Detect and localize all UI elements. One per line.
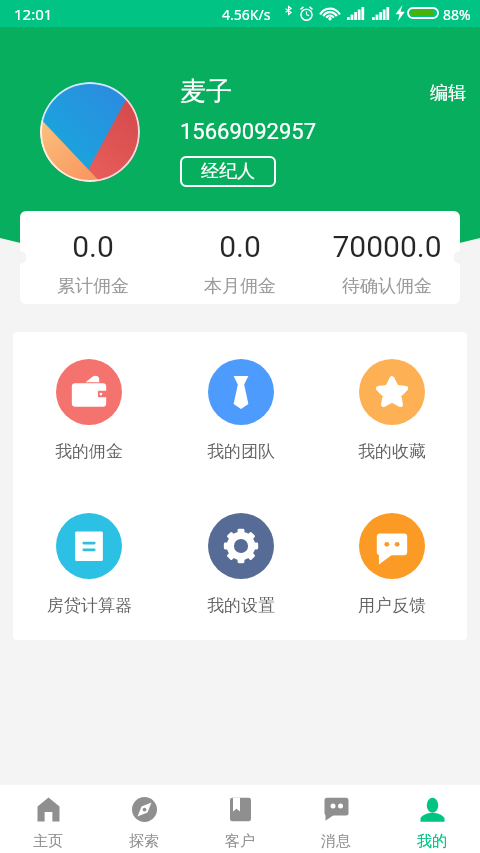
button[interactable]: 我的佣金 xyxy=(13,359,165,462)
staticText: 主页 xyxy=(33,832,63,851)
button[interactable]: 经纪人 xyxy=(180,156,276,187)
staticText: 待确认佣金 xyxy=(342,275,432,298)
button[interactable]: 主页 xyxy=(0,785,96,853)
staticText: 4.56K/s xyxy=(222,5,271,24)
staticText: 消息 xyxy=(321,832,351,851)
staticText: 麦子 xyxy=(180,75,232,108)
button[interactable]: 客户 xyxy=(192,785,288,853)
button[interactable]: 用户反馈 xyxy=(316,513,467,616)
button[interactable]: 房贷计算器 xyxy=(13,513,165,616)
staticText: 我的 xyxy=(417,832,447,851)
button[interactable]: 探索 xyxy=(96,785,192,853)
staticText: 我的收藏 xyxy=(358,441,426,462)
staticText: 0.0 xyxy=(219,229,261,264)
staticText: 本月佣金 xyxy=(204,275,276,298)
staticText: 探索 xyxy=(129,832,159,851)
staticText: 累计佣金 xyxy=(57,275,129,298)
staticText: 编辑 xyxy=(430,82,466,105)
button[interactable]: 0.0 xyxy=(20,211,460,304)
staticText: 70000.0 xyxy=(332,229,442,264)
staticText: 房贷计算器 xyxy=(47,595,132,616)
button[interactable]: 我的团队 xyxy=(165,359,316,462)
button[interactable]: 我的设置 xyxy=(165,513,316,616)
button[interactable]: 消息 xyxy=(288,785,384,853)
staticText: 12:01 xyxy=(14,4,53,24)
staticText: 88% xyxy=(443,5,471,24)
staticText: 我的团队 xyxy=(207,441,275,462)
staticText: 0.0 xyxy=(72,229,114,264)
staticText: 15669092957 xyxy=(180,119,317,145)
staticText: 我的佣金 xyxy=(55,441,123,462)
staticText: 经纪人 xyxy=(201,160,255,183)
staticText: 用户反馈 xyxy=(358,595,426,616)
button[interactable]: 我的收藏 xyxy=(316,359,467,462)
button[interactable]: 编辑 xyxy=(414,74,480,113)
staticText: 我的设置 xyxy=(207,595,275,616)
button[interactable]: 我的 xyxy=(384,785,480,853)
staticText: 客户 xyxy=(225,832,255,851)
